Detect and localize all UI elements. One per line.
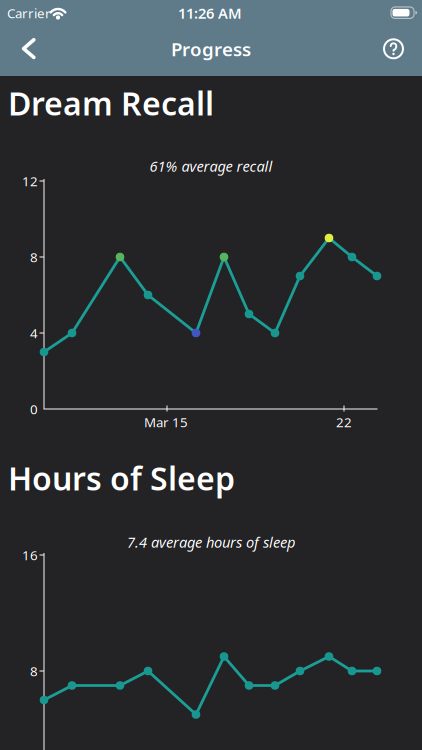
button[interactable]: Back xyxy=(0,0,44,44)
staticText: 11:26 AM xyxy=(178,3,242,23)
staticText: 22 xyxy=(336,413,352,431)
staticText: 8 xyxy=(30,662,38,680)
staticText: 4 xyxy=(30,324,38,342)
staticText: Carrier xyxy=(7,4,51,22)
button[interactable]: Help xyxy=(371,27,415,71)
staticText: 16 xyxy=(22,546,38,564)
staticText: 7.4 average hours of sleep xyxy=(127,532,295,552)
staticText: Mar 15 xyxy=(144,413,188,431)
staticText: 12 xyxy=(22,172,38,190)
staticText: 61% average recall xyxy=(149,156,272,176)
staticText: 0 xyxy=(30,400,38,418)
staticText: Hours of Sleep xyxy=(8,457,235,499)
staticText: Progress xyxy=(171,37,251,61)
staticText: 8 xyxy=(30,248,38,266)
staticText: Dream Recall xyxy=(8,82,214,124)
